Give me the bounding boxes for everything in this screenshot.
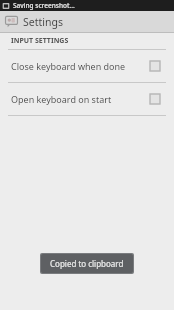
other: App icon — [5, 15, 18, 28]
button[interactable]: Close keyboard when done — [0, 50, 174, 82]
staticText: INPUT SETTINGS — [11, 36, 69, 46]
other: Open keyboard on start — [149, 93, 161, 105]
staticText: Copied to clipboard — [50, 258, 124, 269]
staticText: Close keyboard when done — [11, 60, 126, 72]
other: Screenshot notification — [2, 2, 10, 10]
other: Close keyboard when done — [149, 60, 161, 72]
button[interactable]: Open keyboard on start — [0, 83, 174, 115]
staticText: Saving screenshot... — [13, 1, 75, 10]
button[interactable]: App icon — [0, 11, 174, 32]
staticText: Settings — [23, 15, 63, 29]
staticText: Open keyboard on start — [11, 93, 112, 105]
